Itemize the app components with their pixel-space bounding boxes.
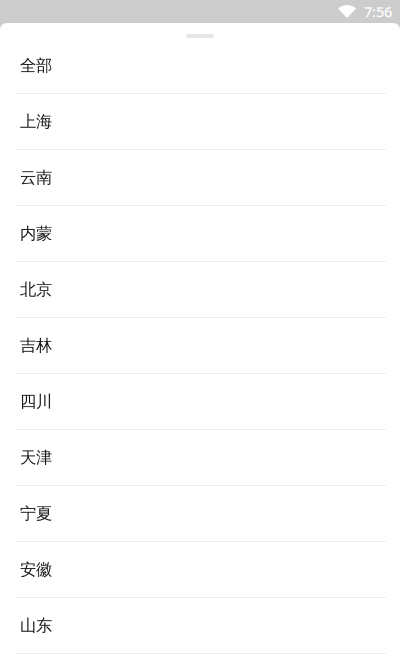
staticText: 7:56 — [364, 1, 392, 21]
button[interactable]: 吉林 — [0, 318, 400, 374]
staticText: 北京 — [20, 279, 52, 300]
button[interactable]: 内蒙 — [0, 206, 400, 262]
button[interactable]: 山东 — [0, 598, 400, 654]
button[interactable]: 全部 — [0, 38, 400, 94]
staticText: 云南 — [20, 167, 52, 188]
button[interactable]: 四川 — [0, 374, 400, 430]
staticText: 安徽 — [20, 559, 52, 580]
button[interactable]: 云南 — [0, 150, 400, 206]
button[interactable]: 宁夏 — [0, 486, 400, 542]
staticText: 吉林 — [20, 335, 52, 356]
button[interactable]: 安徽 — [0, 542, 400, 598]
staticText: 天津 — [20, 447, 52, 468]
staticText: 上海 — [20, 111, 52, 132]
staticText: 山东 — [20, 615, 52, 636]
button[interactable]: 天津 — [0, 430, 400, 486]
staticText: 宁夏 — [20, 503, 52, 524]
staticText: 内蒙 — [20, 223, 52, 244]
staticText: 全部 — [20, 55, 52, 76]
button[interactable]: 北京 — [0, 262, 400, 318]
button[interactable]: 上海 — [0, 94, 400, 150]
staticText: 四川 — [20, 391, 52, 412]
